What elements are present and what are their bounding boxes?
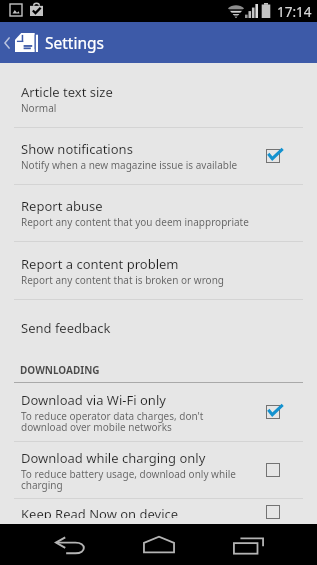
- staticText: Settings: [45, 32, 104, 53]
- staticText: Download via Wi-Fi only: [21, 391, 166, 409]
- button[interactable]: Keep Read Now on device: [0, 499, 317, 524]
- button[interactable]: Report a content problem: [0, 242, 317, 299]
- staticText: Normal: [21, 101, 57, 115]
- staticText: Send feedback: [21, 319, 111, 337]
- staticText: Report a content problem: [21, 255, 179, 273]
- staticText: Keep Read Now on device: [21, 505, 179, 518]
- staticText: Show notifications: [21, 140, 133, 158]
- button[interactable]: Checked: [260, 395, 286, 429]
- button[interactable]: Unchecked: [260, 453, 286, 487]
- staticText: To reduce operator data charges, don't d…: [21, 409, 249, 434]
- button[interactable]: Show notifications: [0, 128, 317, 184]
- button[interactable]: Send feedback: [0, 300, 317, 356]
- staticText: 17:14: [277, 3, 312, 21]
- staticText: Report abuse: [21, 197, 103, 215]
- staticText: Report any content that is broken or wro…: [21, 273, 224, 287]
- button[interactable]: Report abuse: [0, 185, 317, 241]
- button[interactable]: Download via Wi-Fi only: [0, 383, 317, 441]
- button[interactable]: Home: [113, 524, 204, 565]
- button[interactable]: Download while charging only: [0, 442, 317, 498]
- button[interactable]: Article text size: [0, 71, 317, 127]
- staticText: Report any content that you deem inappro…: [21, 215, 249, 229]
- button[interactable]: Unchecked: [260, 499, 286, 524]
- button[interactable]: Recent apps: [203, 524, 294, 565]
- staticText: Article text size: [21, 83, 113, 101]
- button[interactable]: Back: [25, 524, 116, 565]
- staticText: Notify when a new magazine issue is avai…: [21, 158, 238, 172]
- staticText: Download while charging only: [21, 449, 206, 467]
- staticText: DOWNLOADING: [20, 363, 100, 377]
- button[interactable]: Navigate up: [0, 22, 317, 63]
- button[interactable]: Checked: [260, 139, 286, 173]
- staticText: To reduce battery usage, download only w…: [21, 467, 249, 492]
